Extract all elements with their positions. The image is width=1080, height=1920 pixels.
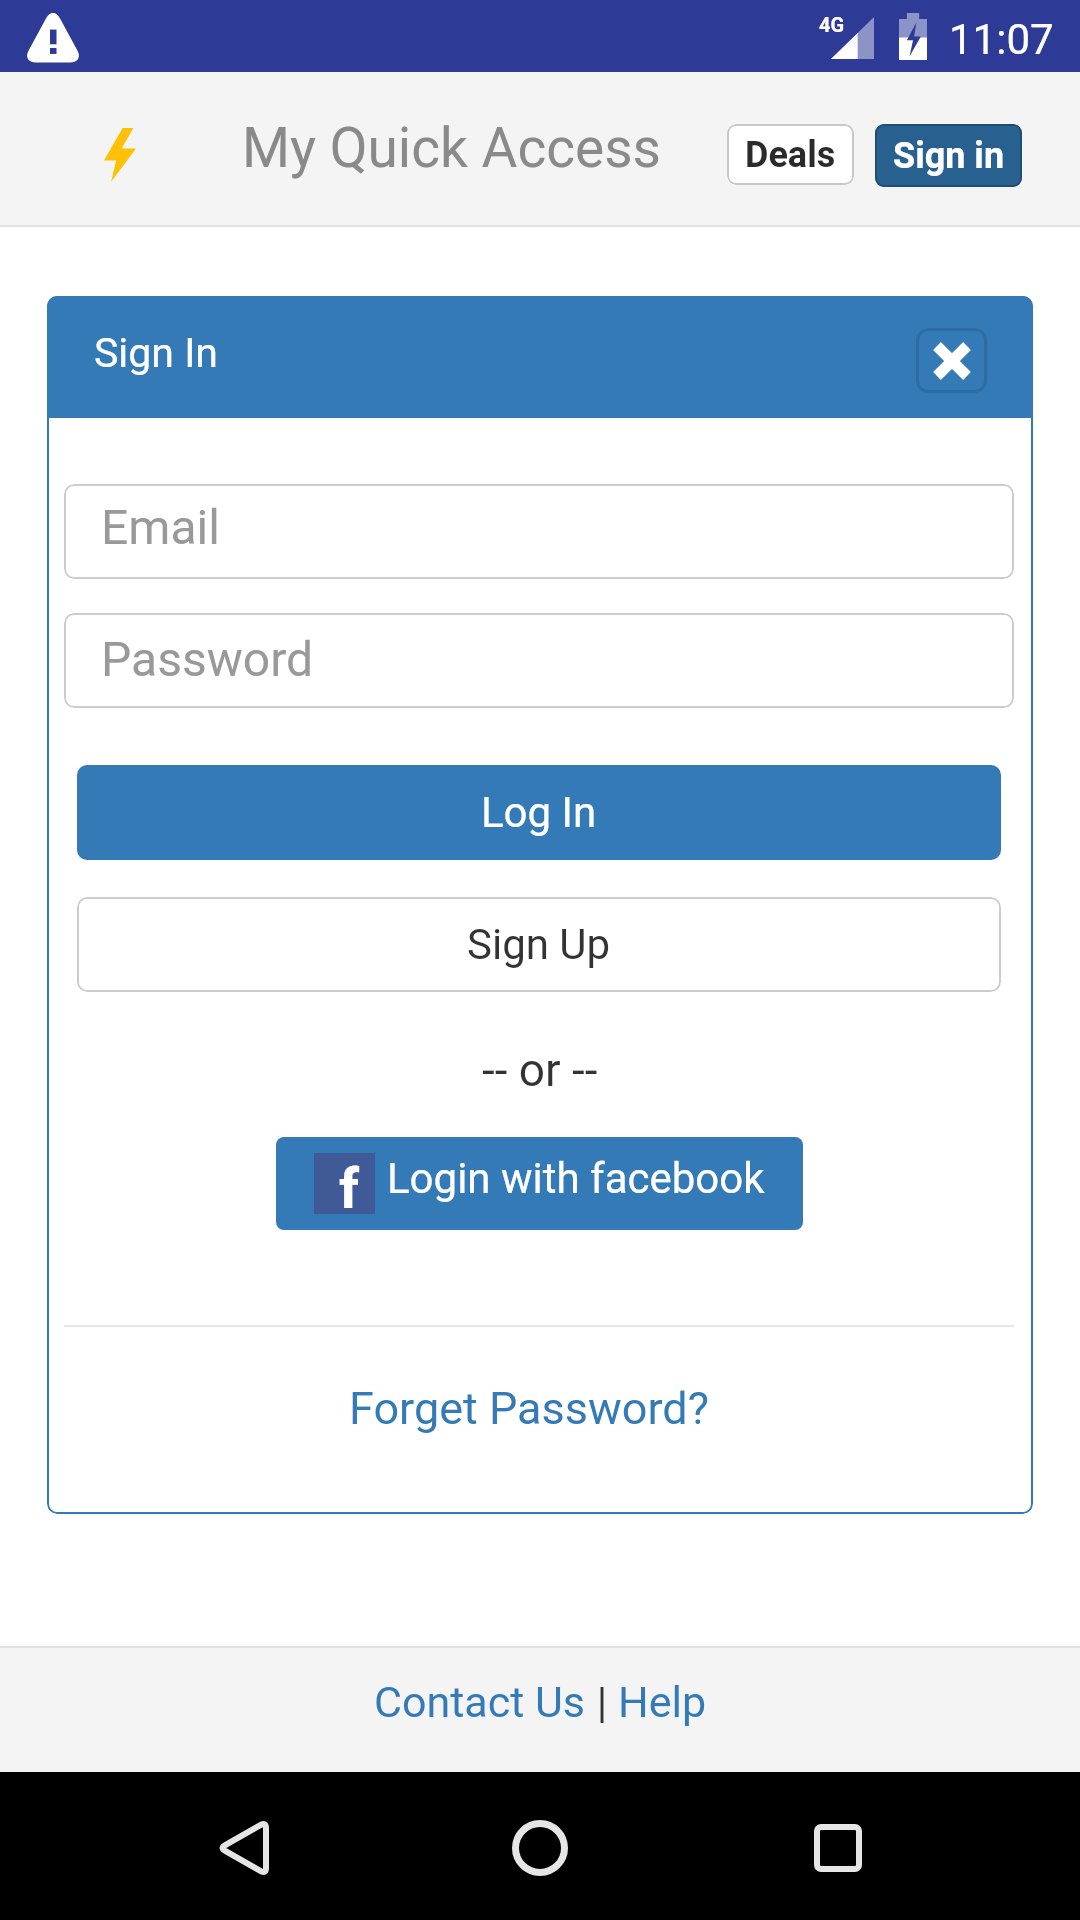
staticText: Sign in bbox=[893, 135, 1005, 177]
staticText: Login with facebook bbox=[387, 1154, 765, 1203]
button[interactable] bbox=[800, 1810, 876, 1886]
button[interactable]: Password bbox=[64, 613, 1014, 708]
staticText: My Quick Access bbox=[242, 116, 661, 180]
button[interactable]: Sign in bbox=[875, 124, 1022, 187]
staticText: Help bbox=[618, 1677, 707, 1727]
staticText: 11:07 bbox=[949, 15, 1054, 64]
staticText: -- or -- bbox=[482, 1043, 598, 1097]
staticText: Email bbox=[101, 499, 220, 555]
button[interactable]: Help bbox=[618, 1677, 707, 1727]
button[interactable]: Log In bbox=[77, 765, 1001, 860]
staticText: f bbox=[339, 1156, 360, 1217]
button[interactable]: Contact Us bbox=[374, 1677, 586, 1727]
button[interactable] bbox=[502, 1810, 578, 1886]
button[interactable]: f bbox=[276, 1137, 803, 1230]
staticText: Forget Password? bbox=[349, 1382, 709, 1435]
staticText: Deals bbox=[745, 134, 836, 176]
staticText: Password bbox=[101, 631, 314, 687]
staticText: Sign Up bbox=[467, 920, 611, 969]
button[interactable]: Sign Up bbox=[77, 897, 1001, 992]
staticText: Log In bbox=[481, 788, 597, 837]
staticText: Sign In bbox=[94, 329, 218, 377]
button[interactable]: Email bbox=[64, 484, 1014, 579]
staticText: 4G bbox=[819, 13, 845, 36]
staticText: | bbox=[586, 1677, 618, 1727]
button[interactable]: Deals bbox=[727, 124, 854, 185]
button[interactable] bbox=[916, 328, 987, 393]
button[interactable]: Forget Password? bbox=[47, 1378, 1022, 1438]
button[interactable] bbox=[205, 1810, 281, 1886]
staticText: Contact Us bbox=[374, 1677, 586, 1727]
